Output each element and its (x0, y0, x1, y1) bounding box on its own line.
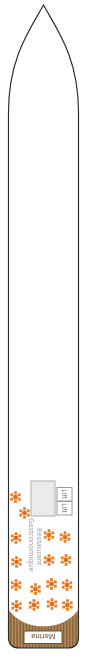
button[interactable]: Deck plan (0, 0, 88, 660)
